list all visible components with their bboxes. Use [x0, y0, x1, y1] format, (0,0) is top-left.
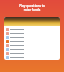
- staticText: Play questions to raise funds: [6, 4, 58, 12]
- button[interactable]: [6, 51, 58, 55]
- button[interactable]: [6, 47, 58, 51]
- button[interactable]: [6, 35, 58, 39]
- button[interactable]: [6, 39, 58, 43]
- button[interactable]: [6, 43, 58, 47]
- button[interactable]: [6, 27, 58, 31]
- button[interactable]: [6, 55, 58, 59]
- button[interactable]: [6, 31, 58, 35]
